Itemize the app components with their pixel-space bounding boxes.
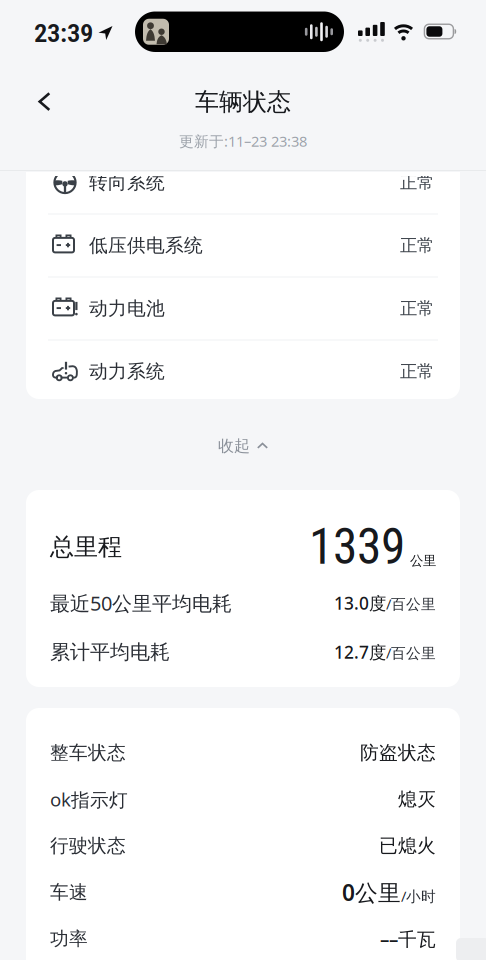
staticText: 23:39: [34, 17, 93, 49]
staticText: 车辆状态: [195, 87, 291, 117]
staticText: 收起: [218, 436, 250, 456]
staticText: ok指示灯: [50, 787, 128, 812]
staticText: 功率: [50, 927, 88, 950]
staticText: 0公里: [342, 877, 401, 907]
staticText: /百公里: [386, 643, 436, 662]
staticText: 更新于:11–23 23:38: [179, 131, 307, 151]
staticText: 正常: [400, 298, 434, 319]
staticText: 整车状态: [50, 741, 126, 764]
staticText: 正常: [400, 172, 434, 193]
staticText: 总里程: [50, 532, 122, 562]
staticText: 低压供电系统: [89, 234, 203, 257]
staticText: 动力系统: [89, 360, 165, 383]
staticText: 13.0度: [334, 591, 386, 614]
staticText: /小时: [401, 886, 436, 906]
staticText: 行驶状态: [50, 834, 126, 857]
staticText: 车速: [50, 881, 88, 904]
staticText: /百公里: [386, 594, 436, 613]
staticText: 正常: [400, 235, 434, 256]
staticText: 已熄火: [379, 834, 436, 857]
staticText: 熄灭: [398, 788, 436, 811]
button[interactable]: 收起: [178, 433, 308, 459]
staticText: 1339: [309, 518, 405, 576]
staticText: 最近50公里平均电耗: [50, 590, 232, 616]
staticText: 正常: [400, 361, 434, 382]
staticText: 公里: [410, 552, 436, 569]
staticText: 累计平均电耗: [50, 640, 170, 664]
staticText: 动力电池: [89, 297, 165, 320]
staticText: 防盗状态: [360, 741, 436, 764]
staticText: 转向系统: [89, 171, 165, 194]
staticText: 12.7度: [334, 640, 386, 663]
button[interactable]: 返回: [26, 80, 63, 123]
staticText: ––千瓦: [380, 926, 436, 951]
